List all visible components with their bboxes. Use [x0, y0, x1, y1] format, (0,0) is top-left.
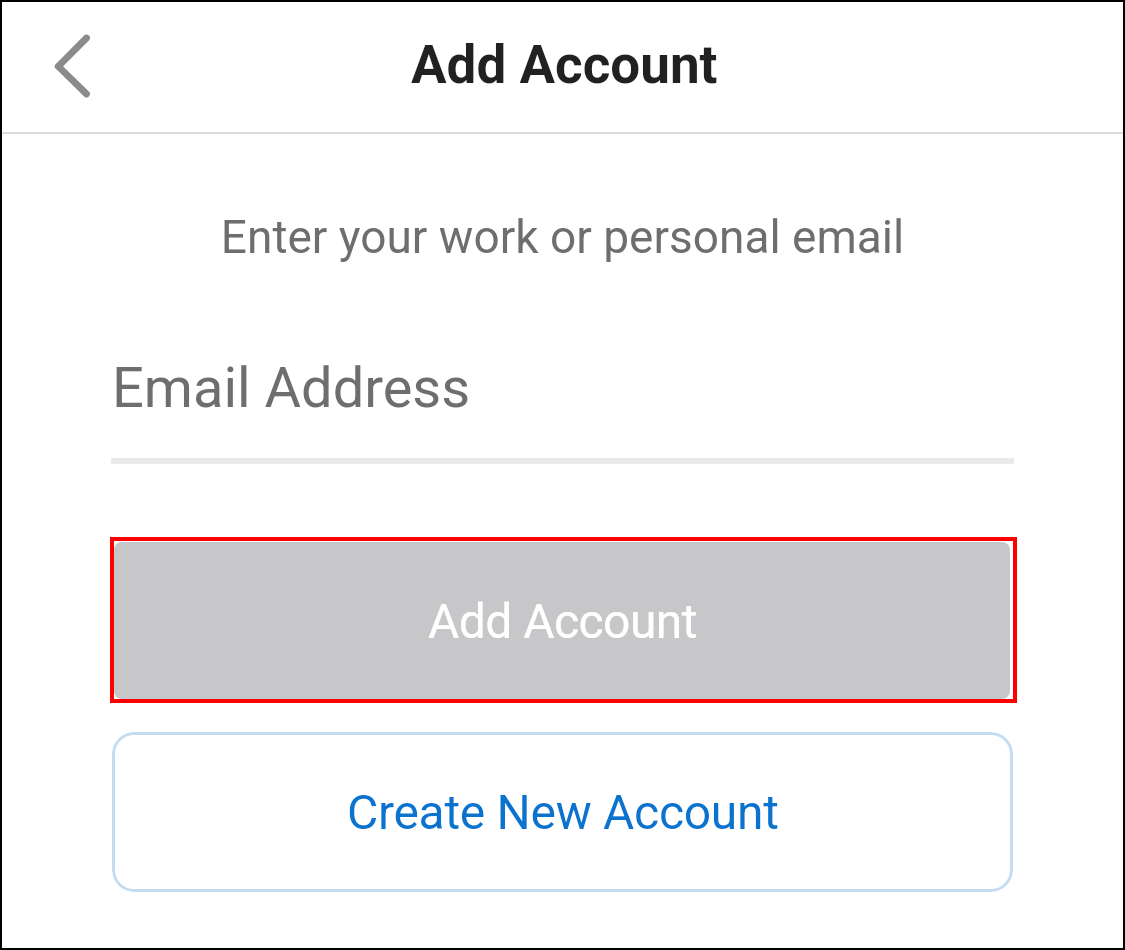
- staticText: Create New Account: [347, 784, 779, 840]
- button[interactable]: Email Address field: [111, 330, 1014, 464]
- staticText: Enter your work or personal email: [0, 210, 1125, 264]
- button[interactable]: Create New Account: [112, 732, 1013, 892]
- button[interactable]: Add Account: [114, 542, 1010, 699]
- staticText: Email Address: [112, 355, 471, 421]
- staticText: Add Account: [411, 34, 718, 96]
- button[interactable]: Back: [17, 6, 127, 126]
- staticText: Add Account: [428, 593, 697, 649]
